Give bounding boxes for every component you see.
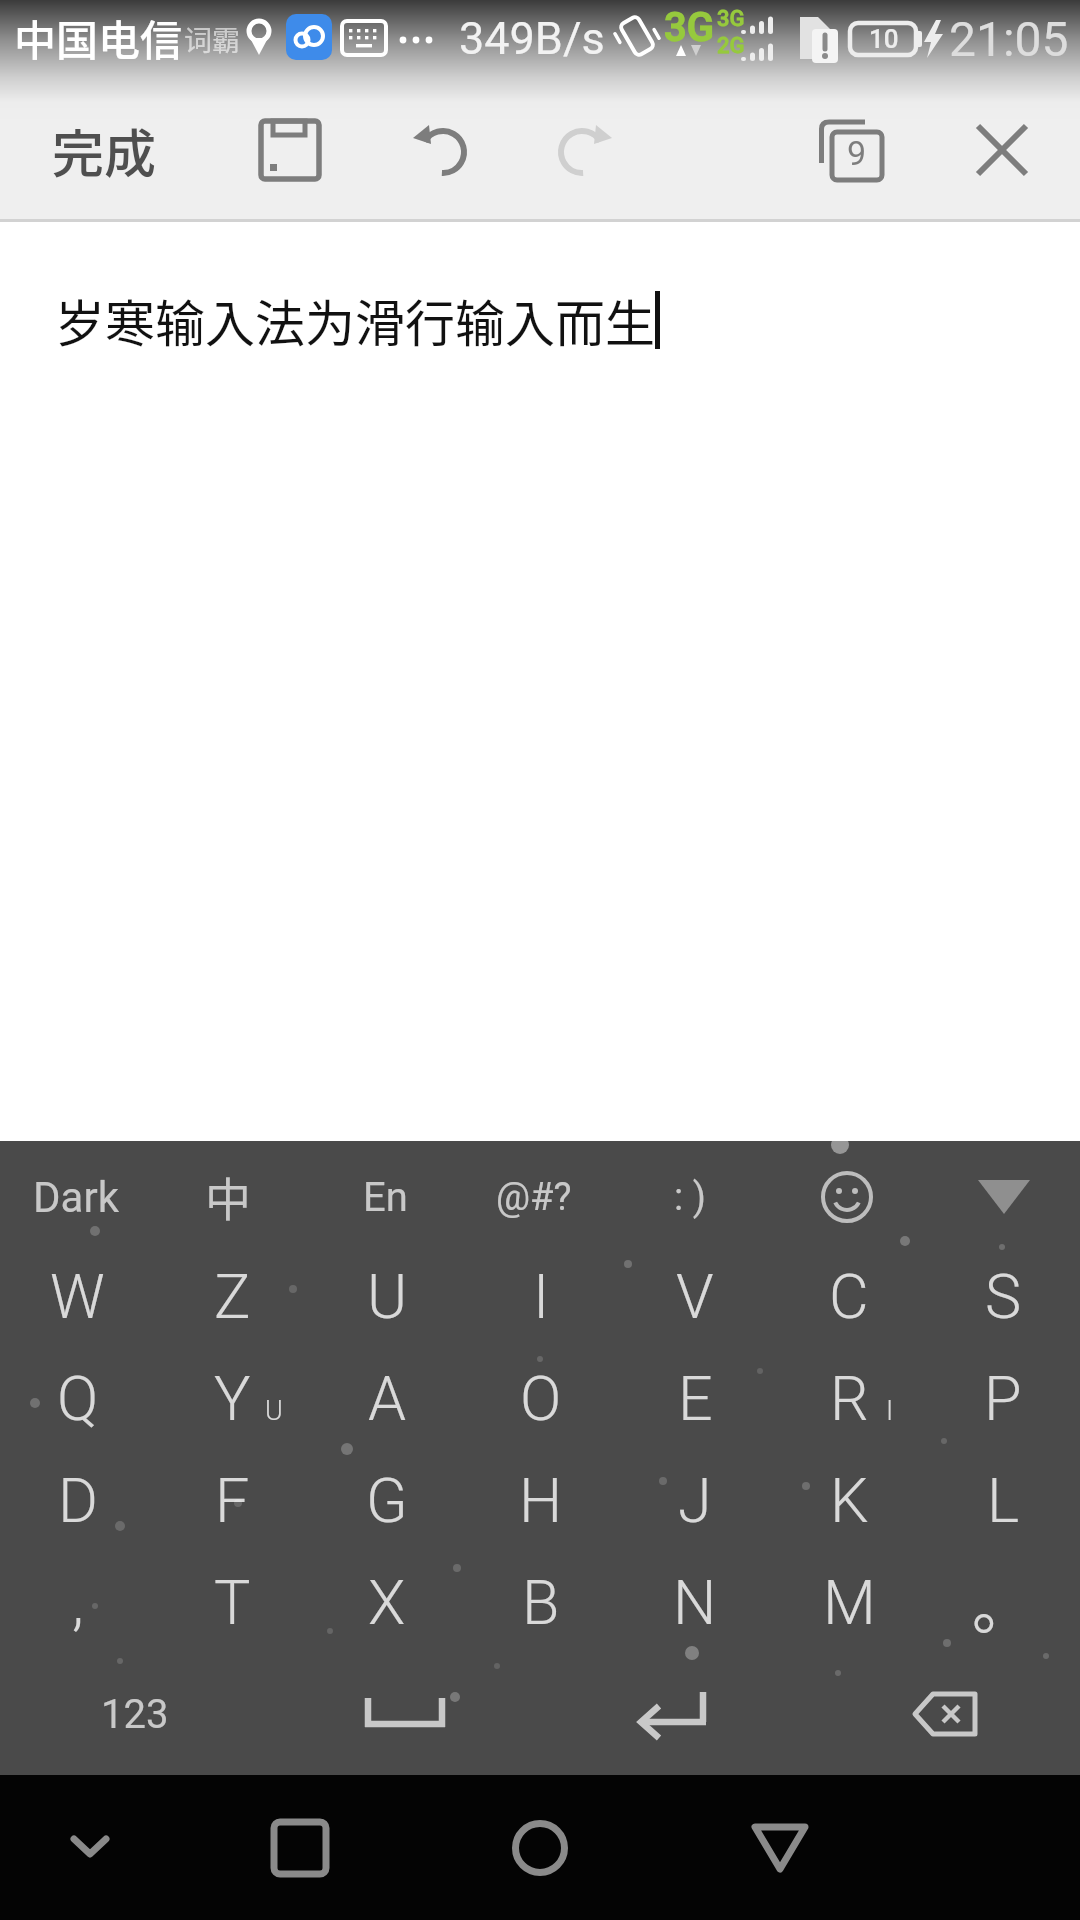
staticText: 21:05	[949, 11, 1069, 67]
staticText: M	[823, 1567, 876, 1638]
button[interactable]	[270, 1653, 540, 1775]
button[interactable]: X	[310, 1551, 464, 1653]
button[interactable]: C	[772, 1245, 926, 1347]
staticText: C	[829, 1261, 869, 1332]
button[interactable]: M	[772, 1551, 926, 1653]
button[interactable]: En	[340, 1162, 430, 1232]
staticText: U	[265, 1395, 283, 1427]
button[interactable]	[475, 1783, 605, 1913]
button[interactable]: I	[464, 1245, 618, 1347]
staticText: F	[215, 1465, 250, 1536]
button[interactable]: L	[926, 1449, 1080, 1551]
staticText: A	[368, 1363, 407, 1434]
button[interactable]: 完成	[29, 105, 179, 195]
staticText: 349B/s	[459, 12, 605, 65]
button[interactable]	[959, 1161, 1049, 1231]
staticText: 岁寒输入法为滑行输入而生	[55, 284, 655, 356]
staticText: Y	[214, 1363, 251, 1434]
button[interactable]: Dark	[11, 1162, 141, 1232]
staticText: X	[368, 1567, 406, 1638]
button[interactable]	[540, 1653, 810, 1775]
button[interactable]: R	[772, 1347, 926, 1449]
staticText: R	[830, 1363, 869, 1434]
staticText: D	[58, 1465, 98, 1536]
staticText: Z	[214, 1261, 251, 1332]
staticText: O	[520, 1363, 562, 1434]
button[interactable]: Z	[155, 1245, 310, 1347]
button[interactable]: P	[926, 1347, 1080, 1449]
button[interactable]: H	[464, 1449, 618, 1551]
button[interactable]: J	[618, 1449, 772, 1551]
button[interactable]: A	[310, 1347, 464, 1449]
button[interactable]: B	[464, 1551, 618, 1653]
staticText: En	[363, 1174, 408, 1221]
staticText: K	[830, 1465, 869, 1536]
button[interactable]: N	[618, 1551, 772, 1653]
button[interactable]	[715, 1783, 845, 1913]
button[interactable]: Q	[0, 1347, 155, 1449]
button[interactable]	[35, 1792, 145, 1902]
staticText: L	[987, 1465, 1020, 1536]
button[interactable]: W	[0, 1245, 155, 1347]
staticText: 123	[101, 1691, 169, 1738]
button[interactable]: 中	[183, 1161, 273, 1231]
staticText: I	[886, 1395, 894, 1427]
button[interactable]: 。	[926, 1551, 1080, 1653]
button[interactable]: D	[0, 1449, 155, 1551]
button[interactable]: T	[155, 1551, 310, 1653]
button[interactable]	[245, 105, 335, 195]
staticText: 中国电信	[14, 7, 183, 68]
staticText: G	[366, 1465, 408, 1536]
staticText: E	[678, 1363, 713, 1434]
button[interactable]: 9	[807, 105, 897, 195]
button[interactable]	[235, 1783, 365, 1913]
button[interactable]	[807, 1162, 887, 1232]
button[interactable]: @#?	[479, 1162, 589, 1232]
button[interactable]	[540, 105, 630, 195]
button[interactable]	[810, 1653, 1080, 1775]
staticText: 10	[869, 24, 899, 54]
staticText: 中	[205, 1163, 251, 1230]
button[interactable]: K	[772, 1449, 926, 1551]
button[interactable]: F	[155, 1449, 310, 1551]
staticText: 。	[972, 1558, 1034, 1646]
staticText: I	[533, 1261, 550, 1332]
staticText: N	[673, 1567, 717, 1638]
button[interactable]: S	[926, 1245, 1080, 1347]
staticText: V	[676, 1261, 714, 1332]
button[interactable]: 123	[0, 1653, 270, 1775]
staticText: ,	[72, 1567, 84, 1638]
staticText: 9	[847, 133, 867, 173]
staticText: @#?	[496, 1175, 572, 1220]
staticText: H	[519, 1465, 563, 1536]
button[interactable]: O	[464, 1347, 618, 1449]
button[interactable]	[957, 105, 1047, 195]
staticText: P	[984, 1363, 1022, 1434]
staticText: : )	[674, 1175, 706, 1220]
button[interactable]: : )	[645, 1162, 735, 1232]
button[interactable]: V	[618, 1245, 772, 1347]
staticText: T	[214, 1567, 251, 1638]
staticText: 3G	[664, 4, 714, 48]
button[interactable]: Y	[155, 1347, 310, 1449]
staticText: 2G	[717, 33, 745, 55]
staticText: J	[678, 1465, 712, 1536]
staticText: Dark	[33, 1173, 119, 1222]
button[interactable]: E	[618, 1347, 772, 1449]
button[interactable]: ,	[0, 1551, 155, 1653]
button[interactable]	[395, 105, 485, 195]
button[interactable]: U	[310, 1245, 464, 1347]
staticText: U	[367, 1261, 408, 1332]
button[interactable]: G	[310, 1449, 464, 1551]
staticText: 词霸	[184, 19, 241, 59]
staticText: W	[50, 1261, 105, 1332]
staticText: B	[522, 1567, 560, 1638]
staticText: S	[985, 1261, 1022, 1332]
staticText: 完成	[52, 113, 157, 188]
staticText: 3G	[717, 6, 745, 28]
staticText: Q	[57, 1363, 99, 1434]
